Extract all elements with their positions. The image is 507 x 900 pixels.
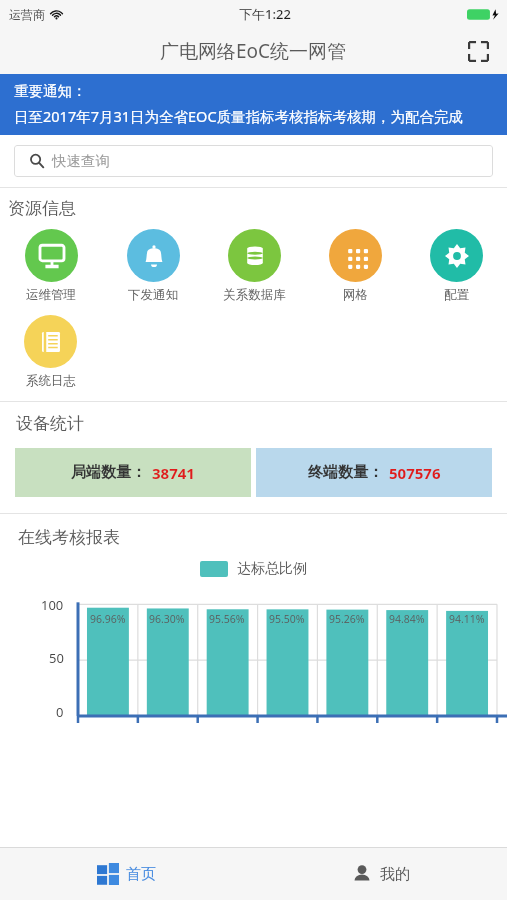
button[interactable]: 我的	[253, 848, 507, 900]
staticText: 配置	[444, 287, 469, 303]
staticText: 日至2017年7月31日为全省EOC质量指标考核指标考核期，为配合完成	[14, 106, 464, 126]
staticText: 我的	[380, 865, 410, 884]
staticText: 96.30%	[149, 612, 185, 626]
staticText: 95.50%	[269, 612, 305, 626]
staticText: 广电网络EoC统一网管	[160, 38, 347, 64]
button[interactable]: 配置	[406, 227, 507, 305]
staticText: 首页	[126, 865, 156, 884]
staticText: 96.96%	[90, 612, 126, 626]
staticText: 94.11%	[449, 612, 485, 626]
staticText: 运营商	[9, 7, 45, 22]
staticText: 95.26%	[329, 612, 365, 626]
staticText: 设备统计	[16, 413, 84, 434]
staticText: 下午1:22	[239, 5, 291, 23]
button[interactable]: 重要通知：	[0, 74, 507, 135]
button[interactable]: 首页	[0, 848, 253, 900]
staticText: 507576	[389, 463, 441, 483]
staticText: 资源信息	[8, 198, 76, 219]
button[interactable]: 网格	[305, 227, 406, 305]
button[interactable]: 下发通知	[102, 227, 204, 305]
button[interactable]: 关系数据库	[204, 227, 305, 305]
staticText: 38741	[152, 463, 195, 483]
staticText: 关系数据库	[223, 287, 286, 303]
staticText: 50	[49, 649, 64, 667]
button[interactable]: 快速查询	[14, 145, 493, 177]
staticText: 100	[41, 596, 64, 614]
staticText: 快速查询	[52, 152, 110, 170]
staticText: 94.84%	[389, 612, 425, 626]
staticText: 网格	[343, 287, 368, 303]
button[interactable]: Scan code	[461, 34, 495, 68]
staticText: 0	[56, 703, 64, 721]
button[interactable]: 局端数量：	[15, 448, 251, 497]
button[interactable]: 终端数量：	[256, 448, 492, 497]
button[interactable]: 系统日志	[0, 313, 101, 391]
staticText: 终端数量：	[308, 463, 383, 482]
staticText: 局端数量：	[71, 463, 146, 482]
staticText: 下发通知	[128, 287, 178, 303]
staticText: 在线考核报表	[18, 527, 120, 548]
staticText: 重要通知：	[14, 82, 87, 100]
staticText: 运维管理	[26, 287, 76, 303]
button[interactable]: 运维管理	[0, 227, 102, 305]
staticText: 95.56%	[209, 612, 245, 626]
staticText: 达标总比例	[237, 560, 307, 578]
staticText: 系统日志	[26, 373, 76, 389]
